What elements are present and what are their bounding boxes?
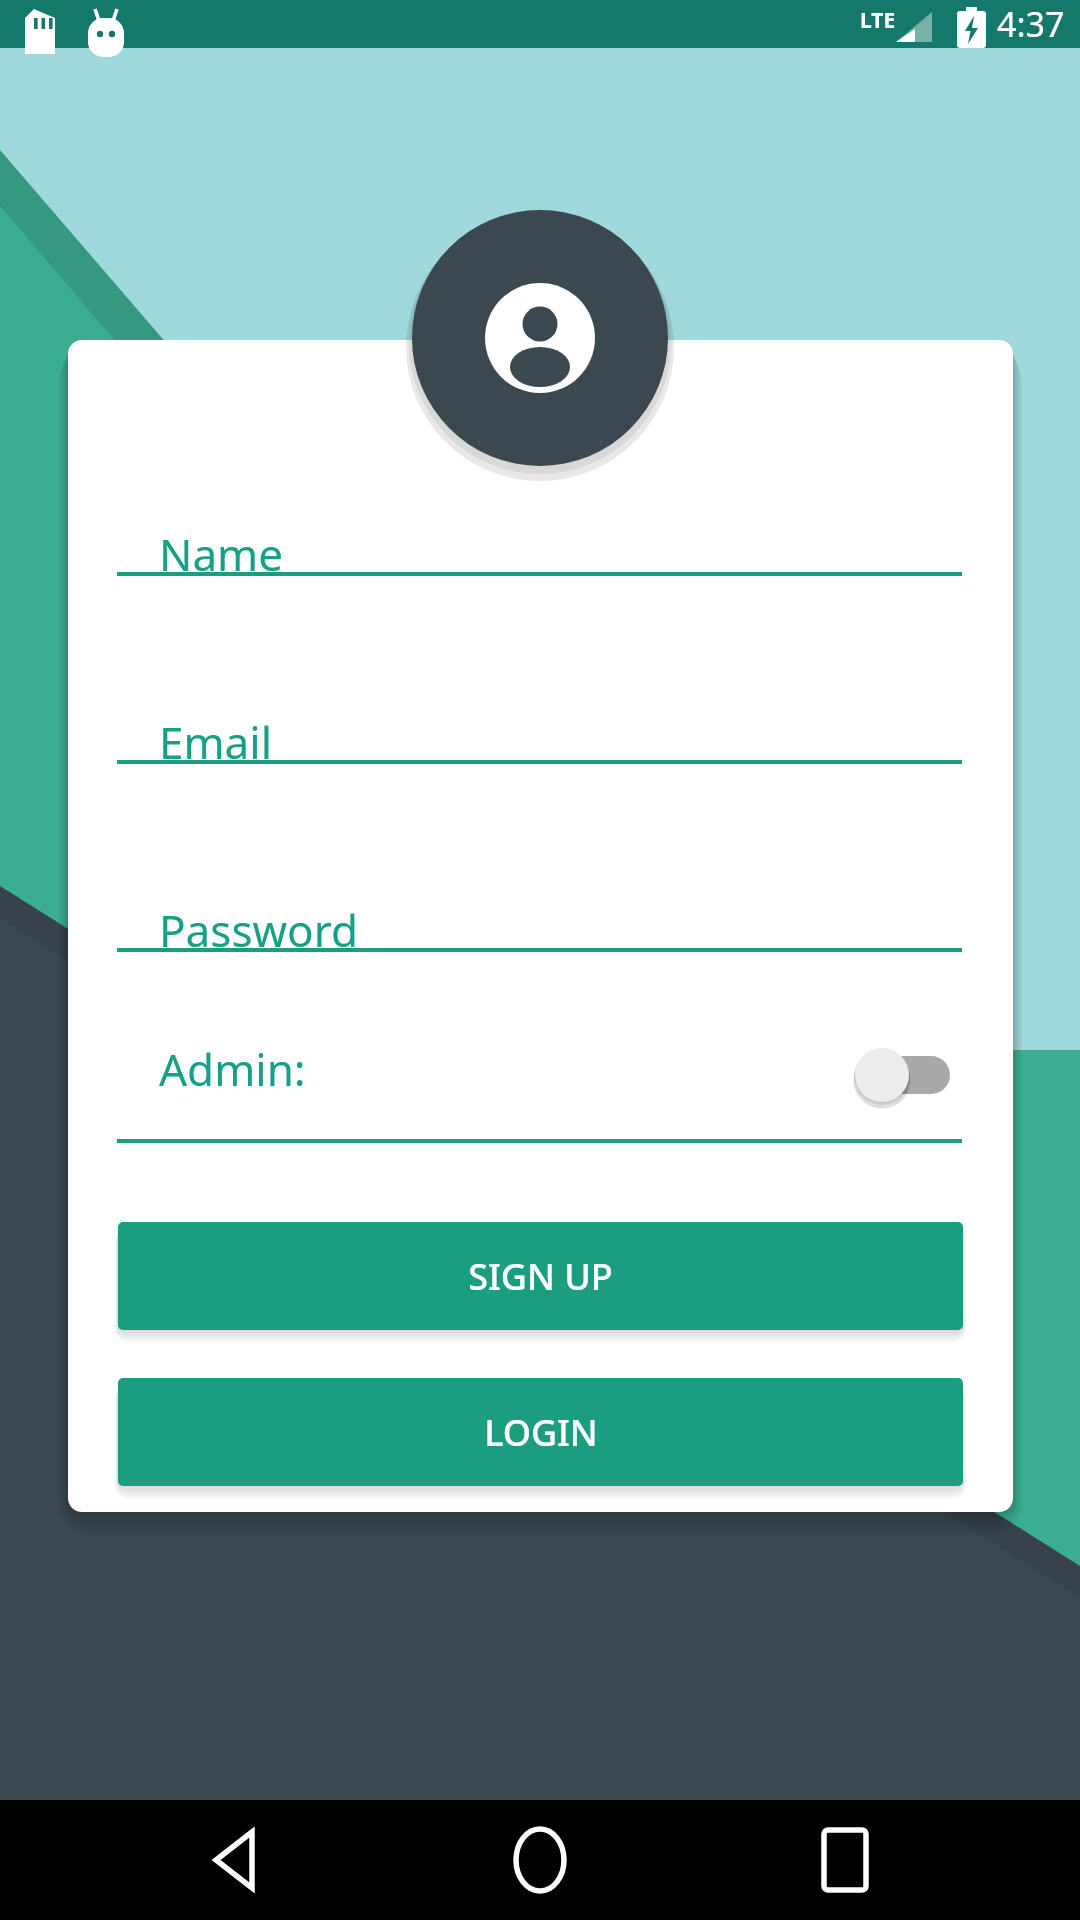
button[interactable]: LOGIN [118,1378,963,1486]
button[interactable]: Password [117,881,962,991]
staticText: Password [159,900,359,960]
staticText: Admin: [159,1039,306,1099]
button[interactable]: Admin switch, off [838,1028,972,1122]
button[interactable]: Recent apps [790,1805,900,1915]
button[interactable]: Admin: [117,1020,962,1130]
staticText: 4:37 [997,1,1065,47]
staticText: Email [159,712,272,772]
staticText: LOGIN [484,1408,598,1457]
button[interactable]: Email [117,693,962,803]
button[interactable]: Name [117,505,962,615]
staticText: LTE [860,6,896,35]
staticText: SIGN UP [468,1252,613,1301]
button[interactable]: SIGN UP [118,1222,963,1330]
staticText: Name [159,524,284,584]
button[interactable]: Home [485,1805,595,1915]
button[interactable]: Back [180,1805,290,1915]
